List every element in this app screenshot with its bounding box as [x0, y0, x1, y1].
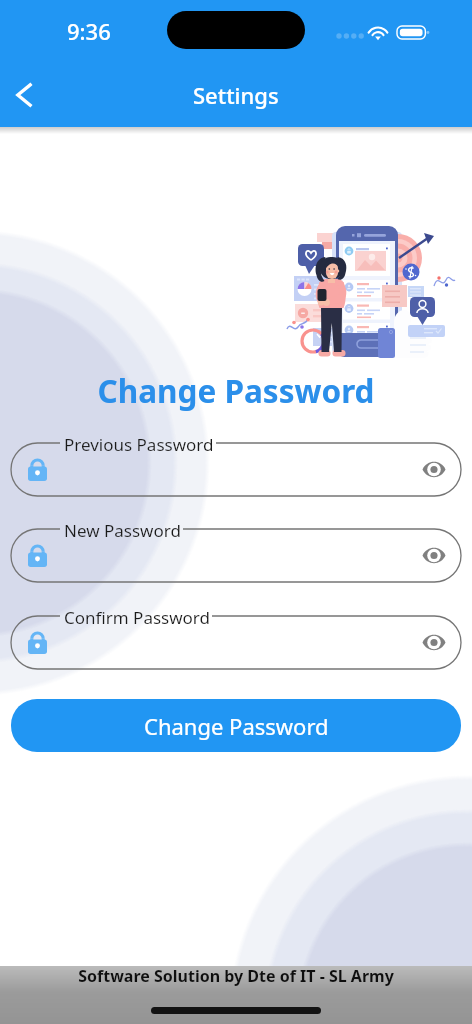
staticText: Confirm Password: [64, 606, 210, 629]
staticText: Settings: [193, 80, 279, 110]
button[interactable]: Show password: [418, 626, 450, 658]
button[interactable]: Change Password: [11, 699, 461, 752]
button[interactable]: Show password: [418, 453, 450, 485]
staticText: Change Password: [0, 369, 472, 412]
button[interactable]: Show password: [418, 539, 450, 571]
staticText: Change Password: [144, 711, 329, 741]
staticText: Previous Password: [64, 433, 214, 456]
staticText: Software Solution by Dte of IT - SL Army: [0, 965, 472, 987]
staticText: 9:36: [67, 16, 111, 46]
button[interactable]: Back: [1, 72, 47, 118]
staticText: New Password: [64, 519, 181, 542]
